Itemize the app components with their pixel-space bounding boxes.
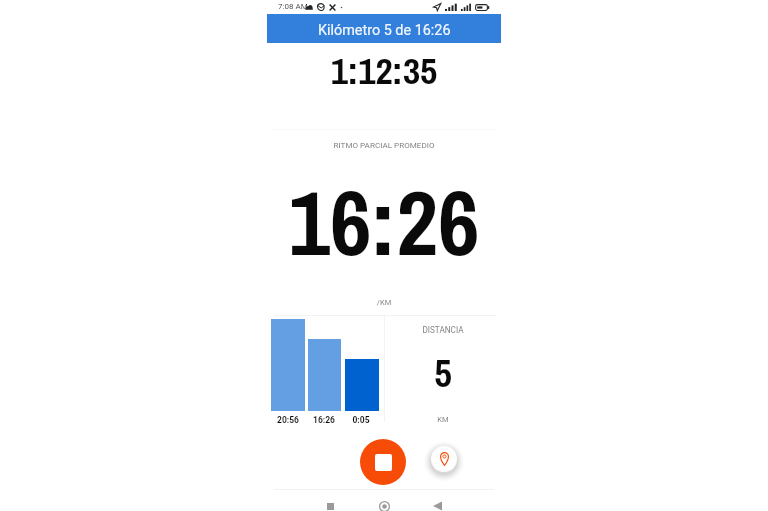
button[interactable]: Kilómetro 5 de 16:26 — [267, 14, 501, 43]
staticText: Kilómetro 5 de 16:26 — [318, 22, 451, 39]
button[interactable]: Recents — [321, 497, 339, 511]
staticText: 7:08 AM — [278, 2, 308, 11]
staticText: 0:05 — [339, 415, 383, 425]
staticText: 1:12:35 — [267, 37, 501, 106]
staticText: 16:26 — [302, 415, 346, 425]
staticText: KM — [385, 415, 501, 424]
button[interactable]: Home — [375, 497, 393, 511]
staticText: /KM — [267, 298, 501, 307]
staticText: 5 — [385, 338, 501, 409]
staticText: 20:56 — [266, 415, 310, 425]
button[interactable]: Show map — [431, 446, 457, 472]
button[interactable]: Back — [428, 497, 446, 511]
staticText: RITMO PARCIAL PROMEDIO — [267, 140, 501, 149]
staticText: 16:26 — [267, 140, 501, 308]
button[interactable]: Stop run — [360, 439, 406, 485]
staticText: DISTANCIA — [385, 325, 501, 335]
